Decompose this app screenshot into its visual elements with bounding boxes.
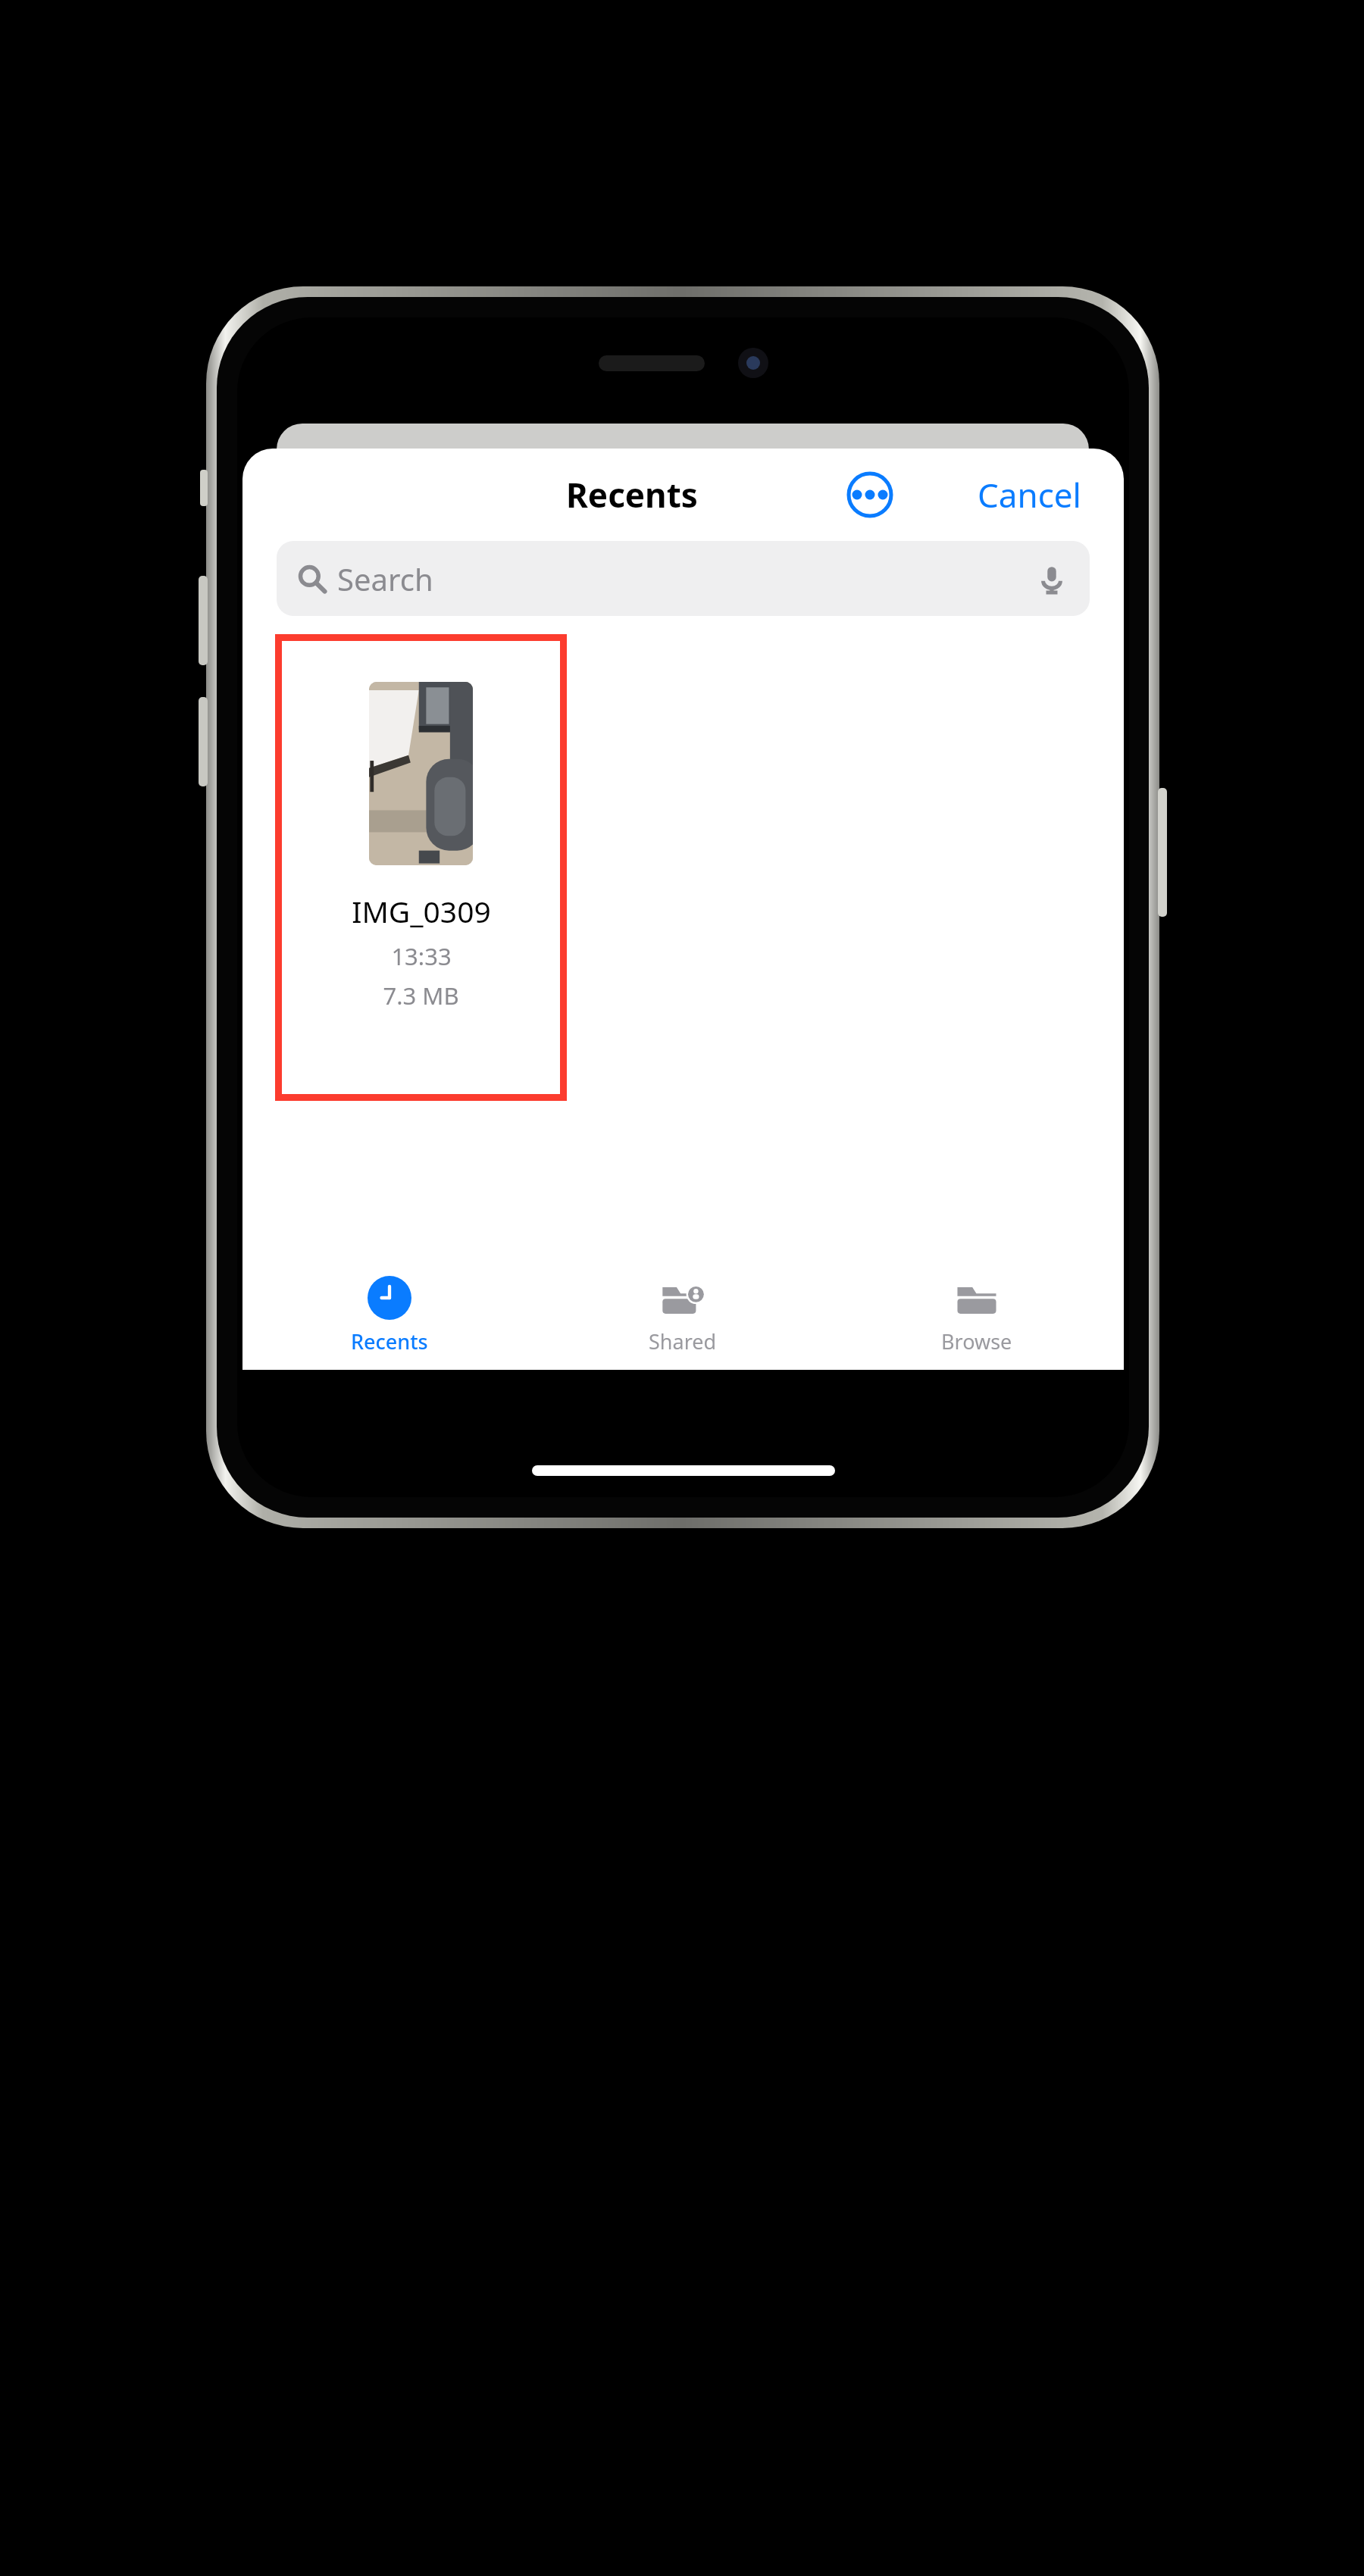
staticText: Shared	[649, 1327, 717, 1355]
button[interactable]: Search	[277, 541, 1090, 616]
staticText: 7.3 MB	[383, 980, 459, 1011]
button[interactable]: More options	[846, 471, 893, 518]
staticText: IMG_0309	[352, 891, 491, 931]
staticText: Cancel	[978, 472, 1081, 517]
button[interactable]: Recents	[242, 1264, 536, 1370]
button[interactable]: IMG_0309	[275, 634, 567, 1101]
staticText: Recents	[566, 472, 698, 517]
staticText: Recents	[351, 1327, 428, 1355]
button[interactable]: Browse	[830, 1264, 1124, 1370]
staticText: Browse	[941, 1327, 1012, 1355]
button[interactable]: Shared	[536, 1264, 830, 1370]
staticText: 13:33	[391, 940, 452, 972]
button[interactable]: Cancel	[971, 466, 1087, 524]
staticText: Search	[337, 558, 433, 599]
